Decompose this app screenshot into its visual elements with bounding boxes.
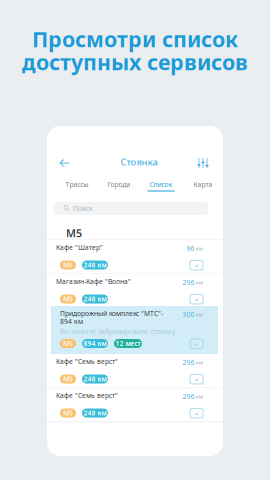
staticText: Просмотри список xyxy=(32,25,238,53)
staticText: Поиск xyxy=(73,204,93,213)
staticText: M5 xyxy=(66,226,82,240)
staticText: 300 xyxy=(182,310,194,319)
staticText: Стоянка xyxy=(120,156,157,168)
staticText: М5 xyxy=(63,375,73,383)
button[interactable]: Поиск xyxy=(54,202,208,215)
staticText: 296 xyxy=(182,278,194,287)
staticText: М5 xyxy=(63,409,73,417)
staticText: М5 xyxy=(63,339,73,348)
button[interactable] xyxy=(47,354,223,388)
staticText: Города xyxy=(107,180,130,189)
staticText: Вы можете забронировать стоянку xyxy=(60,327,175,336)
button[interactable] xyxy=(47,306,223,354)
staticText: 248 км xyxy=(83,261,106,269)
staticText: 248 км xyxy=(83,375,106,383)
button[interactable] xyxy=(47,240,223,274)
button[interactable]: Назад xyxy=(56,154,74,172)
staticText: км xyxy=(196,245,203,252)
staticText: М5 xyxy=(63,261,73,269)
staticText: Трассы xyxy=(65,180,88,189)
staticText: Магазин-Кафе "Волна" xyxy=(56,277,131,286)
staticText: 894 км xyxy=(60,317,83,326)
staticText: Список xyxy=(149,180,172,189)
button[interactable]: Города xyxy=(98,176,140,194)
staticText: км xyxy=(196,279,203,286)
staticText: 248 км xyxy=(83,295,106,303)
staticText: км xyxy=(196,311,203,318)
staticText: Карта xyxy=(193,180,212,189)
staticText: 96 xyxy=(186,244,194,253)
staticText: М5 xyxy=(63,295,73,303)
staticText: км xyxy=(196,359,203,366)
staticText: Придорожный комплекс "МТС"- xyxy=(60,309,163,318)
staticText: 296 xyxy=(182,358,194,367)
staticText: 894 км xyxy=(83,339,106,348)
staticText: 12 мест xyxy=(115,339,140,348)
staticText: Кафе "Шатер" xyxy=(56,243,103,252)
button[interactable] xyxy=(47,388,223,422)
staticText: доступных сервисов xyxy=(22,48,248,76)
staticText: км xyxy=(196,393,203,400)
button[interactable]: Трассы xyxy=(56,176,98,194)
button[interactable]: Карта xyxy=(182,176,224,194)
staticText: Кафе "Семь верст" xyxy=(56,357,118,366)
staticText: 248 км xyxy=(83,409,106,417)
staticText: Кафе "Семь верст" xyxy=(56,391,118,400)
button[interactable]: Список xyxy=(140,176,182,194)
button[interactable]: Фильтр xyxy=(197,156,209,170)
staticText: 296 xyxy=(182,392,194,401)
button[interactable] xyxy=(47,274,223,308)
